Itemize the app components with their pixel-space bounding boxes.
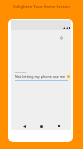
staticText: Enlighten Your Home Screen bbox=[0, 4, 83, 9]
button[interactable]: Back bbox=[19, 122, 29, 130]
button[interactable]: Recent apps bbox=[54, 122, 64, 130]
button[interactable]: Home bbox=[36, 122, 46, 130]
staticText: Reminder bbox=[15, 70, 27, 73]
staticText: Not letting my phone use me bbox=[15, 74, 66, 79]
other: Notifications bbox=[60, 36, 63, 40]
